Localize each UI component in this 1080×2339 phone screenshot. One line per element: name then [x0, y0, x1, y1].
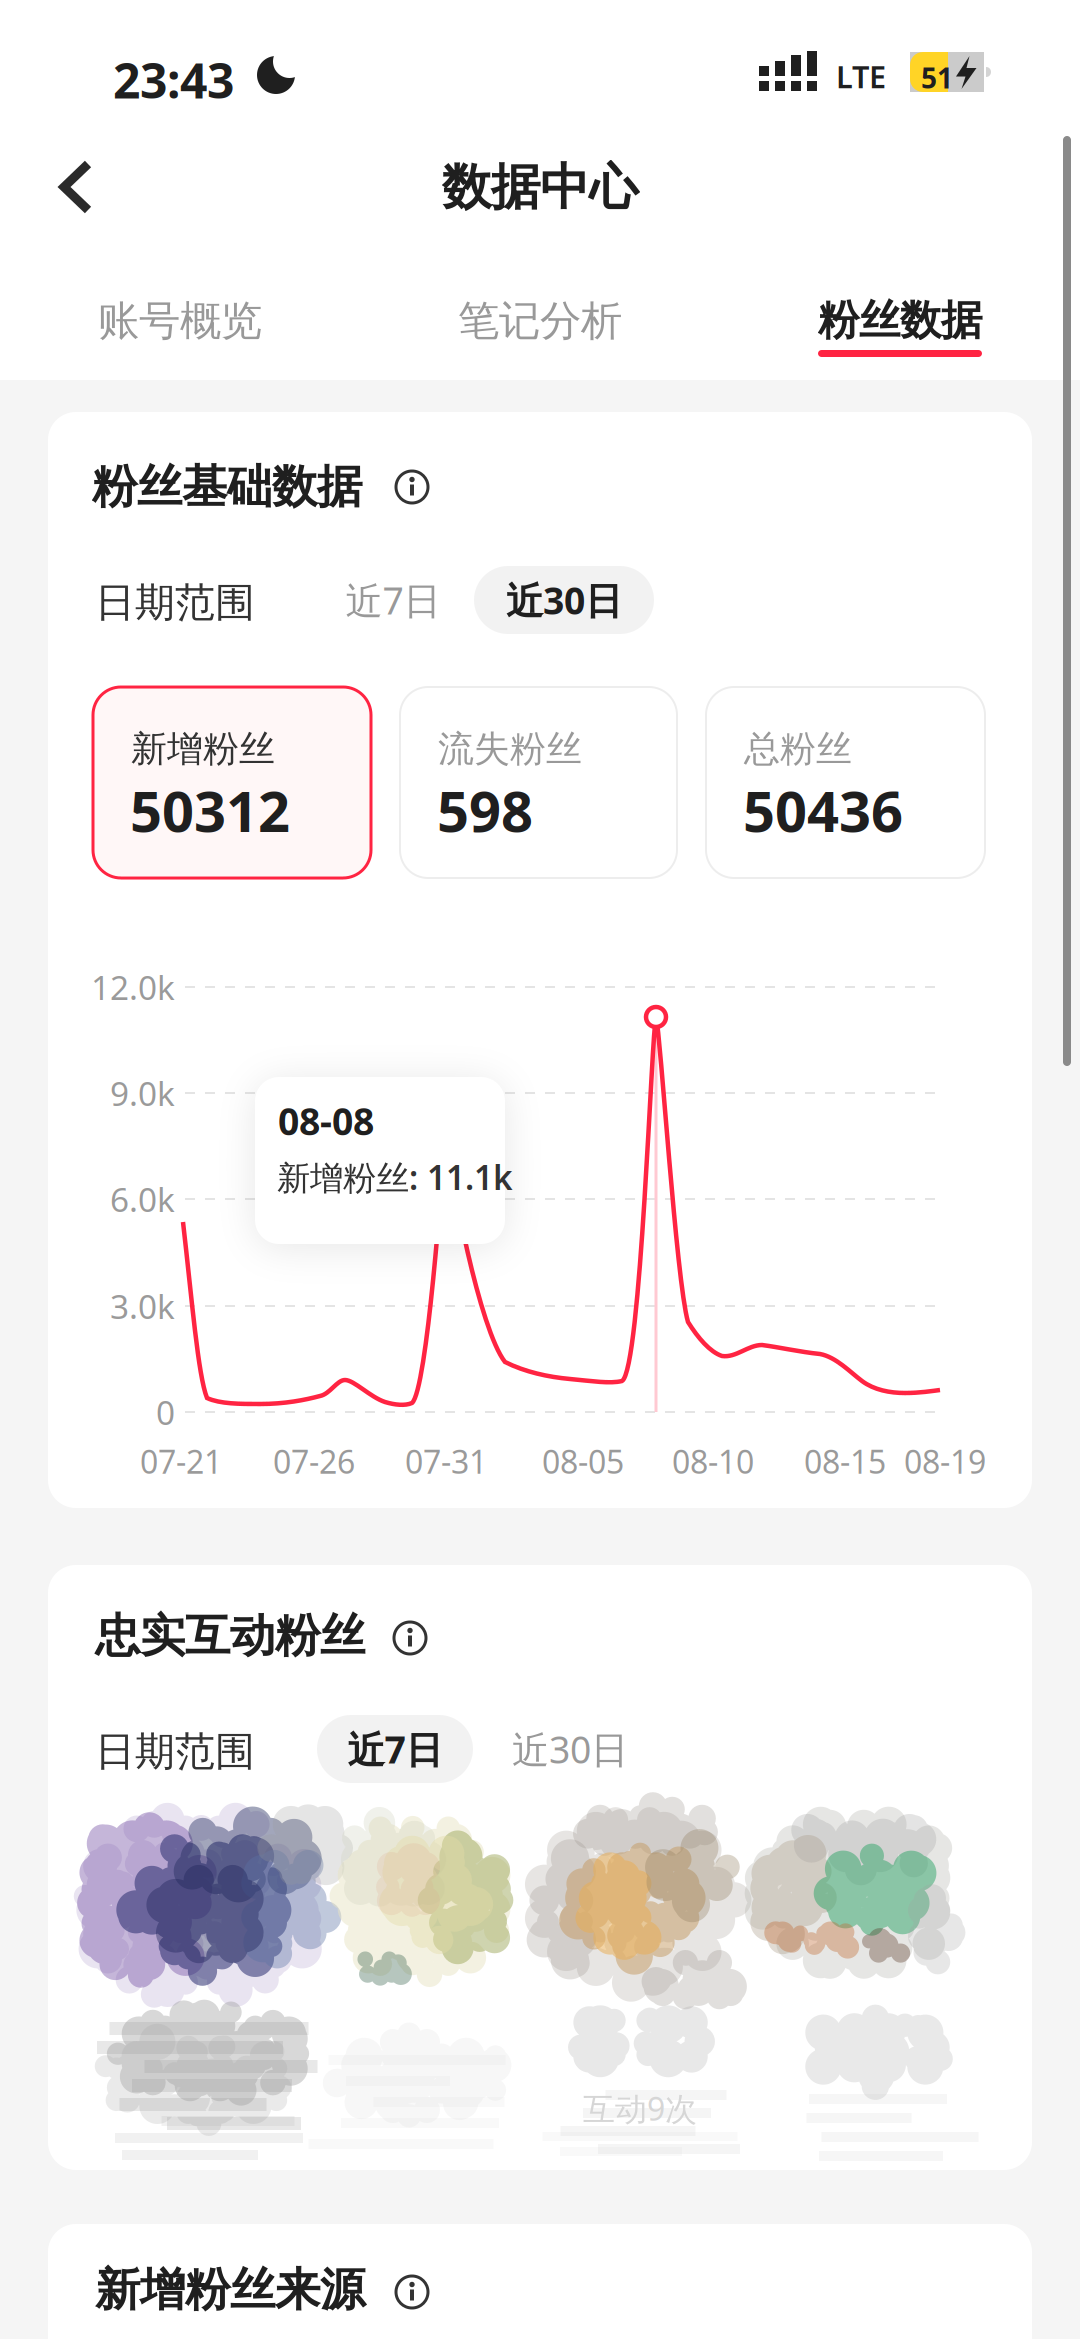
staticText: 23:43: [113, 48, 234, 112]
staticText: 粉丝基础数据: [92, 459, 362, 515]
staticText: 近7日: [347, 1724, 442, 1774]
staticText: 07-26: [273, 1440, 355, 1482]
staticText: 50436: [743, 773, 903, 847]
staticText: 新增粉丝: [131, 727, 275, 771]
staticText: 08-15: [804, 1440, 886, 1482]
button[interactable]: 新增粉丝来源说明: [390, 2270, 434, 2314]
staticText: 近30日: [512, 1724, 628, 1774]
button[interactable]: 近30日: [474, 566, 654, 634]
staticText: 日期范围: [95, 578, 255, 627]
staticText: 08-08: [278, 1096, 374, 1146]
button[interactable]: 流失粉丝: [400, 687, 677, 878]
staticText: 0: [156, 1390, 175, 1434]
button[interactable]: 近30日: [490, 1715, 650, 1783]
staticText: 近30日: [506, 575, 622, 625]
staticText: 粉丝数据: [818, 295, 982, 346]
staticText: 07-31: [405, 1440, 487, 1482]
button[interactable]: 近7日: [317, 1715, 473, 1783]
staticText: 598: [437, 773, 533, 847]
staticText: 笔记分析: [458, 296, 622, 346]
staticText: 12.0k: [91, 965, 175, 1009]
staticText: 数据中心: [442, 157, 638, 218]
button[interactable]: Back: [44, 150, 124, 224]
staticText: LTE: [836, 56, 886, 97]
staticText: 51: [921, 59, 953, 96]
button[interactable]: 账号概览: [0, 281, 360, 361]
staticText: 日期范围: [95, 1727, 255, 1776]
button[interactable]: 笔记分析: [360, 281, 720, 361]
staticText: 忠实互动粉丝: [95, 1608, 365, 1664]
staticText: 总粉丝: [744, 727, 852, 771]
staticText: 新增粉丝来源: [95, 2262, 365, 2318]
staticText: 新增粉丝: 11.1k: [277, 1155, 513, 1199]
staticText: 50312: [130, 773, 290, 847]
staticText: 3.0k: [110, 1284, 175, 1328]
staticText: 9.0k: [110, 1071, 175, 1115]
button[interactable]: 粉丝数据: [720, 281, 1080, 361]
staticText: 6.0k: [110, 1177, 175, 1221]
button[interactable]: 总粉丝: [706, 687, 985, 878]
button[interactable]: 忠实互动粉丝说明: [388, 1616, 432, 1660]
staticText: 互动9次: [583, 2087, 697, 2129]
button[interactable]: 粉丝基础数据说明: [390, 465, 434, 509]
staticText: 08-10: [672, 1440, 754, 1482]
button[interactable]: 新增粉丝: [93, 687, 371, 878]
button[interactable]: 近7日: [318, 566, 468, 634]
staticText: 08-05: [542, 1440, 624, 1482]
staticText: 账号概览: [98, 296, 262, 346]
staticText: 07-21: [140, 1440, 222, 1482]
staticText: 近7日: [345, 575, 440, 625]
staticText: 流失粉丝: [438, 727, 582, 771]
staticText: 08-19: [904, 1440, 986, 1482]
